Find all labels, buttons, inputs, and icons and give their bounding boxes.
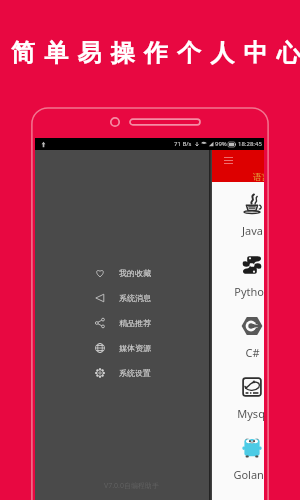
staticText: 18:28:45: [238, 140, 262, 148]
button[interactable]: C#: [212, 304, 264, 365]
button[interactable]: 系统设置: [95, 360, 157, 385]
button[interactable]: Java: [212, 182, 264, 243]
button[interactable]: Golang: [212, 426, 264, 487]
staticText: 71 B/s: [174, 140, 192, 148]
staticText: Python: [234, 284, 264, 299]
staticText: 语言: [253, 172, 264, 183]
staticText: Mysql: [237, 406, 264, 421]
staticText: 系统设置: [119, 368, 151, 378]
staticText: 精品推荐: [119, 318, 151, 328]
button[interactable]: Menu: [224, 157, 233, 164]
staticText: Java: [242, 223, 263, 238]
button[interactable]: 精品推荐: [95, 310, 157, 335]
staticText: 媒体资源: [119, 343, 151, 353]
button[interactable]: 系统消息: [95, 285, 157, 310]
staticText: 我的收藏: [119, 268, 151, 278]
button[interactable]: 我的收藏: [95, 260, 157, 285]
staticText: 99%: [215, 140, 227, 148]
staticText: C#: [245, 345, 260, 360]
button[interactable]: Mysql: [212, 365, 264, 426]
staticText: 简单易操作个人中心: [11, 38, 300, 68]
button[interactable]: Python: [212, 243, 264, 304]
staticText: V7.0.0自编程助手: [104, 481, 159, 491]
button[interactable]: 媒体资源: [95, 335, 157, 360]
staticText: 系统消息: [119, 293, 151, 303]
staticText: Golang: [233, 467, 264, 482]
